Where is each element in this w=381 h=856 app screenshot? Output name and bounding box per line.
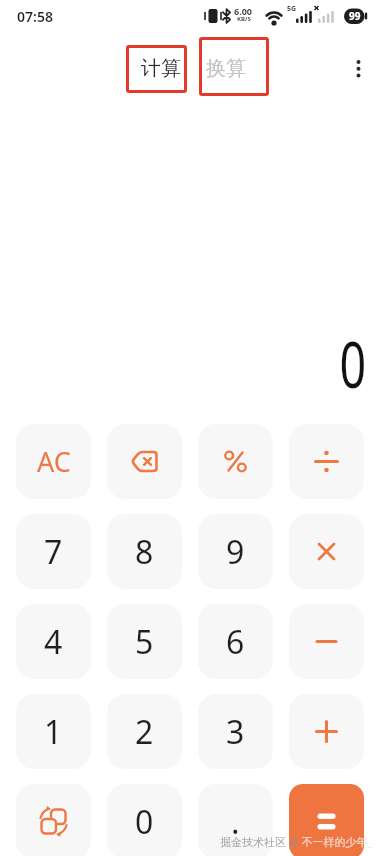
staticText: 6.00 — [234, 5, 252, 17]
button[interactable]: 4 — [16, 604, 91, 679]
button[interactable]: 7 — [16, 514, 91, 589]
button[interactable]: AC — [16, 424, 91, 499]
staticText: 5G — [287, 4, 297, 14]
button[interactable]: 1 — [16, 694, 91, 769]
button[interactable]: 计算 — [121, 52, 201, 84]
button[interactable] — [16, 784, 91, 856]
button[interactable] — [289, 514, 364, 589]
button[interactable] — [198, 424, 273, 499]
button[interactable]: 0 — [107, 784, 182, 856]
staticText: 1 — [44, 710, 63, 754]
staticText: 2 — [135, 710, 154, 754]
staticText: 3 — [226, 710, 245, 754]
staticText: 9 — [226, 530, 245, 574]
button[interactable] — [289, 424, 364, 499]
button[interactable]: 5 — [107, 604, 182, 679]
staticText: KB/S — [237, 15, 251, 23]
staticText: 0 — [340, 321, 367, 407]
staticText: . — [231, 800, 240, 844]
staticText: 掘金技术社区 @ 不一样的少年_ — [220, 834, 373, 849]
button[interactable]: 9 — [198, 514, 273, 589]
staticText: AC — [37, 443, 71, 480]
staticText: 计算 — [141, 56, 181, 81]
staticText: 4 — [44, 620, 63, 664]
button[interactable] — [107, 424, 182, 499]
button[interactable] — [289, 604, 364, 679]
staticText: 5 — [135, 620, 154, 664]
button[interactable]: 6 — [198, 604, 273, 679]
staticText: 换算 — [206, 56, 246, 81]
button[interactable] — [289, 694, 364, 769]
staticText: 0 — [135, 800, 154, 844]
button[interactable]: 换算 — [186, 52, 266, 84]
staticText: 6 — [226, 620, 245, 664]
button[interactable] — [289, 784, 364, 856]
button[interactable]: 2 — [107, 694, 182, 769]
staticText: 7 — [44, 530, 63, 574]
button[interactable]: 3 — [198, 694, 273, 769]
staticText: 99 — [349, 9, 361, 23]
staticText: 8 — [135, 530, 154, 574]
button[interactable]: . — [198, 784, 273, 856]
staticText: 07:58 — [17, 7, 53, 26]
button[interactable] — [350, 55, 368, 83]
button[interactable]: 8 — [107, 514, 182, 589]
